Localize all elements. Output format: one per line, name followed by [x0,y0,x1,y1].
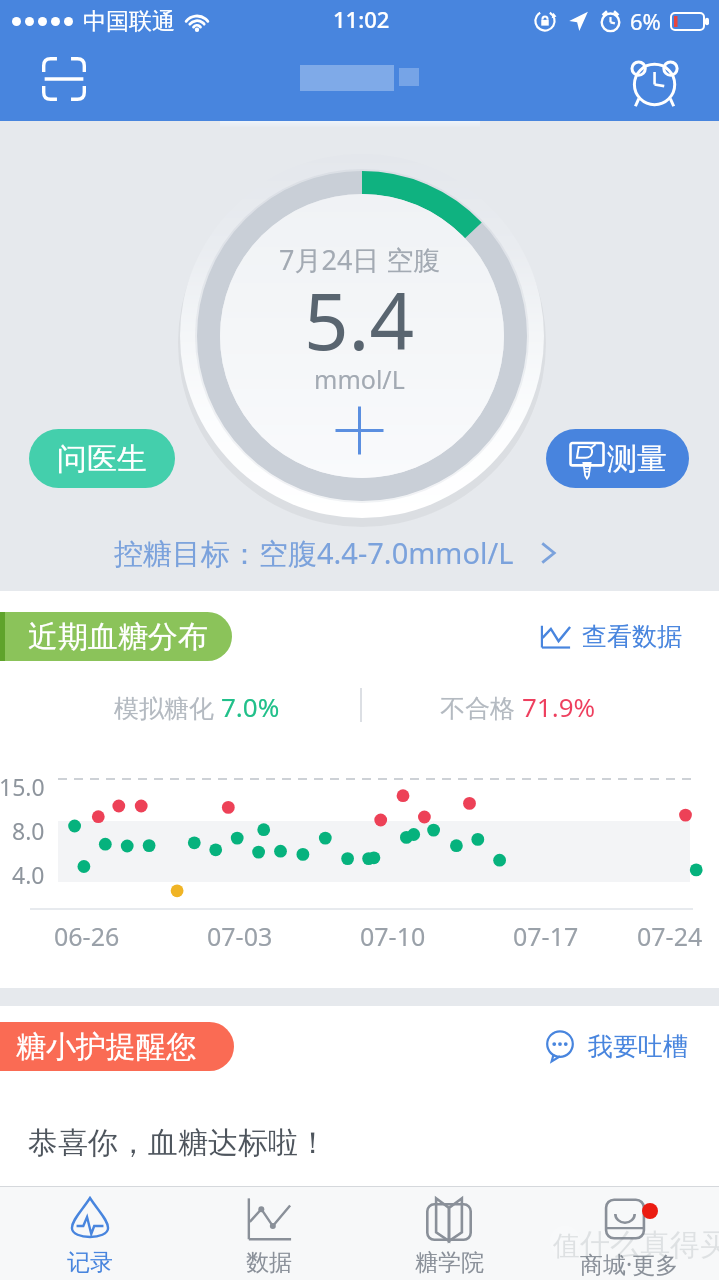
staticText: 控糖目标：空腹4.4-7.0mmol/L [114,533,514,573]
staticText: 6% [630,6,661,36]
button[interactable]: 测量 [546,429,689,488]
staticText: 4.0 [12,859,45,890]
staticText: 不合格 [440,690,522,724]
button[interactable]: 近期血糖分布 [0,612,232,661]
button[interactable]: 糖小护提醒您 [0,1022,234,1071]
staticText: 7.0% [221,689,280,724]
staticText: 糖学院 [415,1248,484,1277]
staticText: 问医生 [57,440,147,478]
staticText: mmol/L [314,362,405,396]
button[interactable]: Alarm [626,52,682,108]
staticText: 5.4 [304,267,415,373]
staticText: 07-10 [360,919,426,953]
button[interactable]: Add record [335,406,384,455]
staticText: 07-03 [207,919,273,953]
button[interactable]: 数据 [179,1186,359,1280]
staticText: 我要吐槽 [588,1031,688,1062]
staticText: 7月24日 空腹 [279,241,441,278]
staticText: 8.0 [12,815,45,846]
staticText: 15.0 [0,771,45,802]
button[interactable]: Scan [38,53,90,105]
staticText: 值 [553,1229,580,1263]
staticText: 记录 [67,1248,113,1277]
staticText: 商城·更多 [580,1248,679,1279]
staticText: 糖小护提醒您 [16,1028,196,1066]
staticText: 什么真得买 [580,1226,719,1264]
button[interactable]: 我要吐槽 [544,1030,688,1062]
button[interactable]: 查看数据 [540,620,682,652]
button[interactable]: 记录 [0,1186,179,1280]
staticText: 11:02 [333,4,390,34]
staticText: 查看数据 [582,621,682,652]
staticText: 恭喜你，血糖达标啦！ [28,1124,328,1162]
staticText: 07-24 [637,919,703,953]
staticText: 中国联通 [83,7,175,36]
staticText: 测量 [607,440,667,478]
staticText: 71.9% [522,689,596,724]
staticText: 数据 [246,1248,292,1277]
button[interactable]: 商城·更多 [539,1186,719,1280]
button[interactable]: 控糖目标：空腹4.4-7.0mmol/L [114,533,561,573]
staticText: 模拟糖化 [114,690,221,724]
staticText: 近期血糖分布 [28,618,208,656]
staticText: 07-17 [513,919,579,953]
button[interactable]: 糖学院 [359,1186,539,1280]
staticText: 06-26 [54,919,120,953]
button[interactable]: 问医生 [29,429,175,488]
